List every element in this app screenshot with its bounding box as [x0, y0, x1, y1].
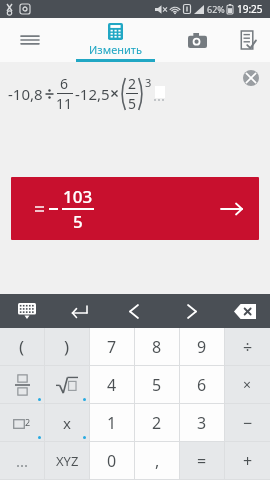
button[interactable]: 4 — [90, 366, 134, 403]
staticText: -12,5 — [75, 84, 110, 104]
button[interactable]: 9 — [180, 328, 224, 365]
button[interactable]: Изменить — [60, 18, 170, 62]
staticText: ( — [19, 335, 25, 358]
button[interactable] — [45, 366, 89, 403]
button[interactable]: 6 — [180, 366, 224, 403]
button[interactable]: Clear — [243, 70, 259, 86]
button[interactable]: 103 — [11, 177, 259, 240]
button[interactable]: 1 — [90, 404, 134, 441]
button[interactable]: Hide keyboard — [10, 294, 44, 328]
button[interactable]: XYZ — [45, 442, 89, 479]
button[interactable]: 2 — [135, 404, 179, 441]
button[interactable]: x — [45, 404, 89, 441]
staticText: 5 — [128, 94, 137, 113]
staticText: 5 — [73, 210, 83, 233]
staticText: ÷ — [243, 336, 253, 358]
staticText: 7 — [107, 336, 117, 358]
button[interactable]: 7 — [90, 328, 134, 365]
button[interactable]: Backspace — [226, 294, 264, 328]
staticText: 2 — [152, 412, 162, 434]
button[interactable]: Menu — [0, 18, 60, 62]
staticText: 2 — [128, 74, 137, 93]
staticText: x — [63, 413, 71, 433]
button[interactable]: Forward — [176, 295, 208, 327]
button[interactable]: Next step — [219, 196, 245, 222]
button[interactable]: 5 — [135, 366, 179, 403]
staticText: Изменить — [89, 42, 142, 57]
button[interactable]: ) — [45, 328, 89, 365]
staticText: ... — [16, 451, 29, 471]
staticText: 8 — [152, 336, 162, 358]
staticText: ) — [64, 335, 70, 358]
staticText: XYZ — [56, 452, 79, 470]
button[interactable]: = — [180, 442, 224, 479]
staticText: 3 — [197, 412, 207, 434]
staticText: + — [243, 450, 253, 472]
staticText: 19:25 — [237, 2, 263, 16]
button[interactable]: 8 — [135, 328, 179, 365]
staticText: 6 — [60, 74, 69, 93]
staticText: 9 — [197, 336, 207, 358]
button[interactable]: − — [225, 404, 270, 441]
staticText: − — [243, 412, 253, 434]
staticText: 3 — [145, 75, 152, 90]
staticText: 62% — [207, 3, 225, 15]
staticText: 11 — [56, 94, 73, 113]
button[interactable]: , — [135, 442, 179, 479]
staticText: × — [243, 375, 252, 394]
button[interactable]: × — [225, 366, 270, 403]
button[interactable]: ... — [0, 442, 44, 479]
button[interactable]: 2 — [0, 404, 44, 441]
button[interactable]: Enter — [62, 294, 96, 328]
button[interactable]: 3 — [180, 404, 224, 441]
button[interactable]: Camera — [170, 18, 225, 62]
staticText: 2 — [25, 416, 31, 428]
staticText: -10,8 — [8, 84, 43, 104]
staticText: 4 — [107, 374, 117, 396]
button[interactable]: ( — [0, 328, 44, 365]
staticText: 0 — [107, 450, 117, 472]
staticText: = — [197, 450, 207, 472]
button[interactable]: Previous — [118, 295, 150, 327]
button[interactable]: ÷ — [225, 328, 270, 365]
button[interactable]: Solutions — [225, 18, 270, 62]
staticText: 1 — [107, 412, 117, 434]
staticText: 5 — [152, 374, 162, 396]
button[interactable]: 0 — [90, 442, 134, 479]
button[interactable]: + — [225, 442, 270, 479]
staticText: 6 — [197, 374, 207, 396]
button[interactable] — [0, 366, 44, 403]
staticText: 103 — [63, 185, 93, 208]
staticText: , — [155, 450, 160, 472]
